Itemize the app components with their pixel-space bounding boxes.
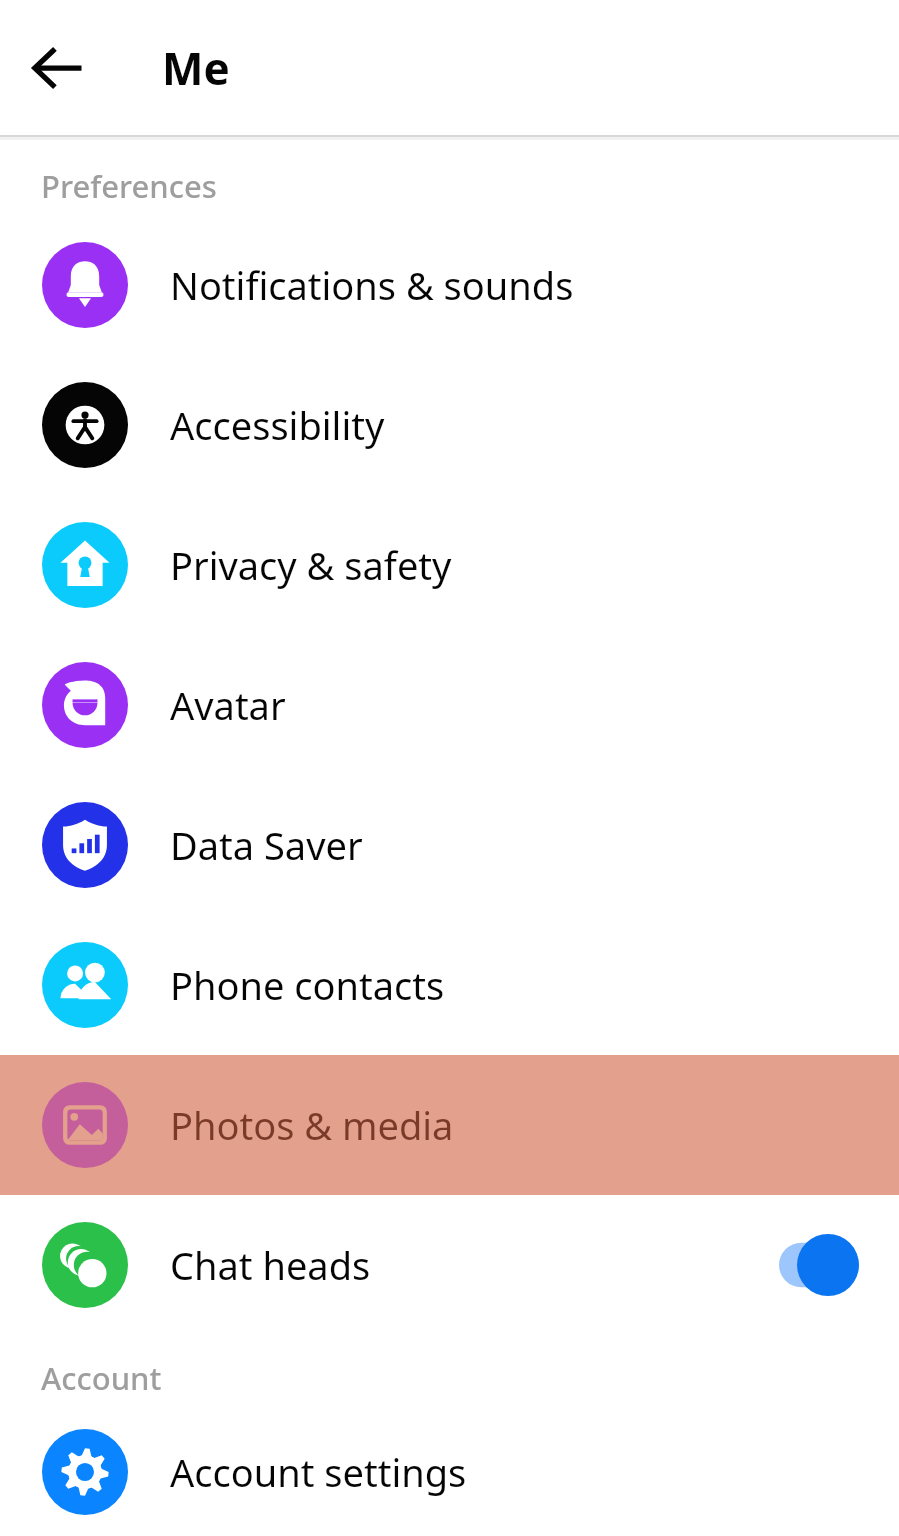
staticText: Account bbox=[41, 1357, 162, 1399]
staticText: Notifications & sounds bbox=[170, 259, 859, 311]
staticText: Photos & media bbox=[170, 1099, 859, 1151]
button[interactable]: Phone contacts bbox=[0, 915, 899, 1055]
staticText: Avatar bbox=[170, 679, 859, 731]
button[interactable]: Avatar bbox=[0, 635, 899, 775]
button[interactable]: Privacy & safety bbox=[0, 495, 899, 635]
button[interactable]: Chat heads toggle bbox=[759, 1234, 859, 1296]
staticText: Accessibility bbox=[170, 399, 859, 451]
button[interactable]: Photos & media bbox=[0, 1055, 899, 1195]
staticText: Chat heads bbox=[170, 1239, 759, 1291]
staticText: Me bbox=[162, 38, 230, 98]
staticText: Privacy & safety bbox=[170, 539, 859, 591]
button[interactable]: Back bbox=[22, 32, 94, 104]
button[interactable]: Data Saver bbox=[0, 775, 899, 915]
button[interactable]: Account settings bbox=[0, 1407, 899, 1536]
staticText: Phone contacts bbox=[170, 959, 859, 1011]
button[interactable]: Accessibility bbox=[0, 355, 899, 495]
staticText: Account settings bbox=[170, 1446, 859, 1498]
button[interactable]: Notifications & sounds bbox=[0, 215, 899, 355]
staticText: Preferences bbox=[41, 165, 217, 207]
button[interactable]: Chat heads bbox=[0, 1195, 899, 1335]
staticText: Data Saver bbox=[170, 819, 859, 871]
